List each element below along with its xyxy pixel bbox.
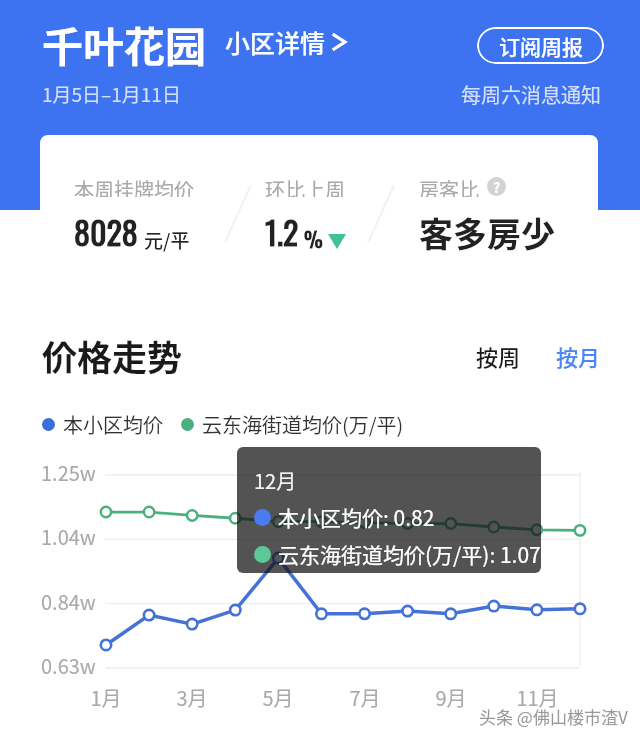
staticText: 3月	[176, 683, 208, 712]
staticText: 1.04w	[41, 522, 96, 551]
staticText: 环比上周	[265, 175, 345, 197]
staticText: 本小区均价	[63, 410, 163, 439]
staticText: 头条 @佛山楼市渣V	[479, 704, 628, 729]
staticText: 9月	[435, 683, 467, 712]
staticText: 云东海街道均价(万/平): 1.07	[278, 539, 541, 569]
staticText: 千叶花园	[42, 14, 206, 70]
button[interactable]: 按月	[550, 334, 607, 378]
staticText: 0.63w	[41, 651, 96, 680]
button[interactable]: 按周	[470, 334, 527, 378]
staticText: 按周	[476, 340, 521, 372]
staticText: 7月	[349, 683, 381, 712]
staticText: 1.2	[265, 208, 299, 255]
staticText: %	[304, 223, 323, 254]
staticText: 云东海街道均价(万/平)	[202, 410, 404, 439]
staticText: 房客比	[419, 175, 479, 197]
staticText: 每周六消息通知	[461, 80, 601, 109]
staticText: 本周挂牌均价	[74, 175, 194, 197]
button[interactable]: 订阅周报	[477, 27, 604, 64]
staticText: 5月	[262, 683, 294, 712]
staticText: 1.25w	[41, 458, 96, 487]
button[interactable]: 小区详情	[225, 24, 348, 60]
staticText: 订阅周报	[499, 31, 583, 61]
staticText: 客多房少	[419, 208, 555, 257]
staticText: 小区详情	[225, 24, 326, 60]
staticText: ?	[493, 177, 501, 196]
staticText: 按月	[556, 340, 601, 372]
staticText: 0.84w	[41, 587, 96, 616]
staticText: 1月5日–1月11日	[42, 80, 181, 108]
staticText: 8028	[74, 208, 138, 255]
staticText: 价格走势	[42, 330, 183, 381]
staticText: 11月	[516, 683, 559, 712]
staticText: 12月	[254, 466, 297, 495]
staticText: 本小区均价: 0.82	[278, 502, 435, 532]
staticText: 元/平	[144, 226, 190, 254]
button[interactable]: Help	[487, 177, 506, 196]
staticText: 1月	[90, 683, 122, 712]
